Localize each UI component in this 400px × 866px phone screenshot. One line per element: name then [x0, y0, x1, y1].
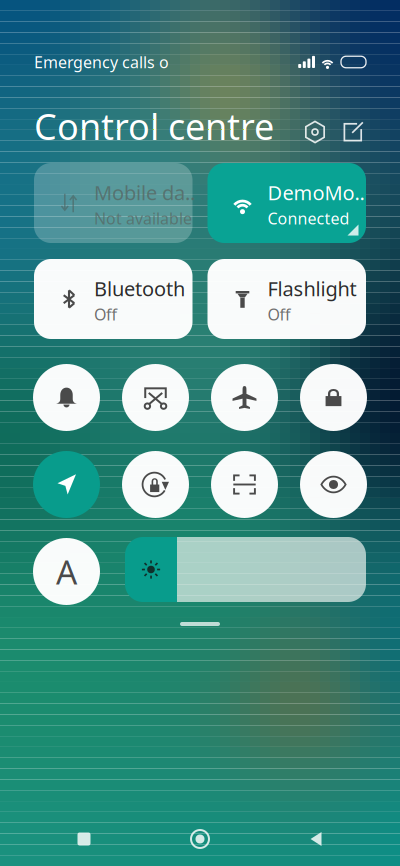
button[interactable]: DemoMo.. — [207, 163, 366, 243]
button[interactable]: Reading mode — [300, 451, 367, 518]
button[interactable]: Scan — [211, 451, 278, 518]
staticText: DemoMo.. — [267, 179, 364, 206]
button[interactable]: Bluetooth — [34, 259, 192, 339]
button[interactable]: Silent — [33, 364, 100, 431]
staticText: Flashlight — [267, 275, 356, 302]
button[interactable]: Mobile da.. — [34, 163, 192, 243]
button[interactable]: Recents — [52, 817, 116, 861]
button[interactable]: Back — [284, 817, 348, 861]
button[interactable]: Lock — [300, 364, 367, 431]
button[interactable]: Screenshot — [122, 364, 189, 431]
staticText: Connected — [267, 208, 349, 229]
staticText: Off — [94, 304, 117, 325]
button[interactable]: Home — [168, 817, 232, 861]
staticText: A — [56, 549, 77, 594]
button[interactable]: Brightness — [125, 537, 366, 602]
staticText: Not available — [94, 208, 192, 229]
button[interactable]: Settings — [302, 119, 328, 145]
button[interactable]: Edit — [340, 119, 366, 145]
staticText: Control centre — [34, 102, 274, 150]
staticText: Bluetooth — [94, 275, 185, 302]
staticText: Emergency calls o — [34, 51, 169, 73]
button[interactable]: Auto-rotate — [122, 451, 189, 518]
staticText: Mobile da.. — [94, 179, 195, 206]
button[interactable]: Location — [33, 451, 100, 518]
staticText: Off — [267, 304, 290, 325]
button[interactable]: Aeroplane mode — [211, 364, 278, 431]
button[interactable]: Auto brightness — [33, 538, 100, 605]
button[interactable]: Flashlight — [207, 259, 366, 339]
